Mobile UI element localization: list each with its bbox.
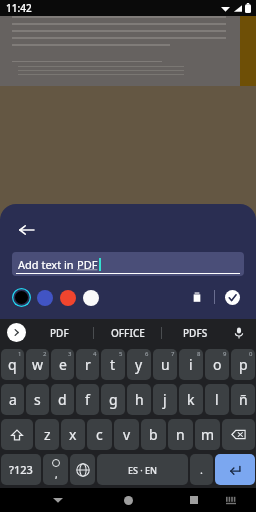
staticText: ñ	[239, 390, 248, 409]
staticText: i	[189, 355, 193, 374]
staticText: PDF	[77, 257, 98, 272]
staticText: f	[85, 390, 90, 409]
button[interactable]: m	[195, 419, 220, 450]
button[interactable]: More suggestions	[7, 323, 26, 342]
button[interactable]: n	[168, 419, 193, 450]
button[interactable]: Change language	[70, 454, 95, 485]
staticText: o	[213, 355, 222, 374]
staticText: z	[44, 425, 51, 444]
button[interactable]: Color	[12, 288, 31, 307]
button[interactable]: t	[101, 349, 125, 380]
button[interactable]: Voice input	[229, 323, 249, 343]
staticText: 2	[43, 350, 47, 358]
button[interactable]: Color	[35, 288, 54, 307]
staticText: 6	[145, 350, 149, 358]
staticText: t	[110, 355, 116, 374]
staticText: ?123	[9, 462, 33, 477]
staticText: l	[215, 390, 219, 409]
staticText: k	[187, 390, 195, 409]
staticText: x	[69, 425, 77, 444]
button[interactable]: s	[26, 384, 49, 415]
staticText: .	[200, 462, 203, 477]
button[interactable]: r	[76, 349, 99, 380]
staticText: PDFS	[183, 326, 208, 340]
button[interactable]: ?123	[1, 454, 41, 485]
button[interactable]: d	[51, 384, 74, 415]
staticText: j	[163, 390, 167, 409]
button[interactable]: Color	[58, 288, 77, 307]
staticText: p	[239, 355, 248, 374]
staticText: 3	[68, 350, 72, 358]
staticText: g	[109, 390, 118, 409]
button[interactable]: e	[51, 349, 74, 380]
button[interactable]: PDF	[26, 319, 93, 346]
button[interactable]: w	[26, 349, 49, 380]
staticText: Add text in	[18, 257, 77, 272]
staticText: 0	[249, 350, 253, 358]
staticText: ,	[55, 467, 58, 481]
button[interactable]: v	[114, 419, 139, 450]
button[interactable]: Back	[12, 216, 40, 244]
button[interactable]: q	[1, 349, 24, 380]
button[interactable]: y	[127, 349, 151, 380]
staticText: 11:42	[6, 1, 32, 15]
staticText: OFFICE	[111, 326, 145, 340]
button[interactable]: OFFICE	[94, 319, 161, 346]
staticText: h	[135, 390, 144, 409]
button[interactable]: ñ	[231, 384, 255, 415]
button[interactable]: PDFS	[162, 319, 229, 346]
button[interactable]: Hide keyboard	[222, 491, 240, 509]
staticText: 1	[18, 350, 22, 358]
button[interactable]: x	[61, 419, 85, 450]
staticText: s	[34, 390, 41, 409]
button[interactable]: o	[205, 349, 229, 380]
staticText: 5	[119, 350, 123, 358]
staticText: n	[176, 425, 185, 444]
button[interactable]: Delete	[185, 285, 209, 309]
staticText: a	[9, 390, 17, 409]
button[interactable]: Enter	[215, 454, 255, 485]
button[interactable]: z	[35, 419, 59, 450]
staticText: w	[32, 355, 44, 374]
button[interactable]: l	[205, 384, 229, 415]
staticText: ES · EN	[128, 464, 158, 476]
button[interactable]: a	[1, 384, 24, 415]
button[interactable]: Color	[81, 288, 100, 307]
staticText: 9	[223, 350, 227, 358]
staticText: 8	[197, 350, 201, 358]
button[interactable]: c	[87, 419, 112, 450]
staticText: u	[161, 355, 170, 374]
staticText: y	[135, 355, 143, 374]
button[interactable]: b	[141, 419, 166, 450]
button[interactable]: Back	[48, 490, 68, 510]
button[interactable]: u	[153, 349, 177, 380]
staticText: q	[8, 355, 17, 374]
staticText: m	[201, 425, 215, 444]
staticText: r	[85, 355, 91, 374]
button[interactable]: Home	[118, 490, 138, 510]
button[interactable]: Add text in	[12, 252, 244, 276]
staticText: 7	[171, 350, 175, 358]
staticText: PDF	[50, 326, 69, 340]
button[interactable]: ES · EN	[97, 454, 188, 485]
button[interactable]: Recents	[184, 490, 204, 510]
button[interactable]: k	[179, 384, 203, 415]
staticText: b	[149, 425, 158, 444]
button[interactable]: Period	[190, 454, 213, 485]
button[interactable]: Backspace	[222, 419, 255, 450]
staticText: e	[59, 355, 67, 374]
button[interactable]: j	[153, 384, 177, 415]
button[interactable]: Emoji and comma	[43, 454, 68, 485]
button[interactable]: Shift	[1, 419, 33, 450]
button[interactable]: f	[76, 384, 99, 415]
button[interactable]: i	[179, 349, 203, 380]
staticText: d	[58, 390, 67, 409]
staticText: 4	[93, 350, 97, 358]
staticText: c	[96, 425, 103, 444]
staticText: v	[123, 425, 131, 444]
button[interactable]: g	[101, 384, 125, 415]
button[interactable]: p	[231, 349, 255, 380]
button[interactable]: Confirm	[220, 285, 244, 309]
button[interactable]: h	[127, 384, 151, 415]
